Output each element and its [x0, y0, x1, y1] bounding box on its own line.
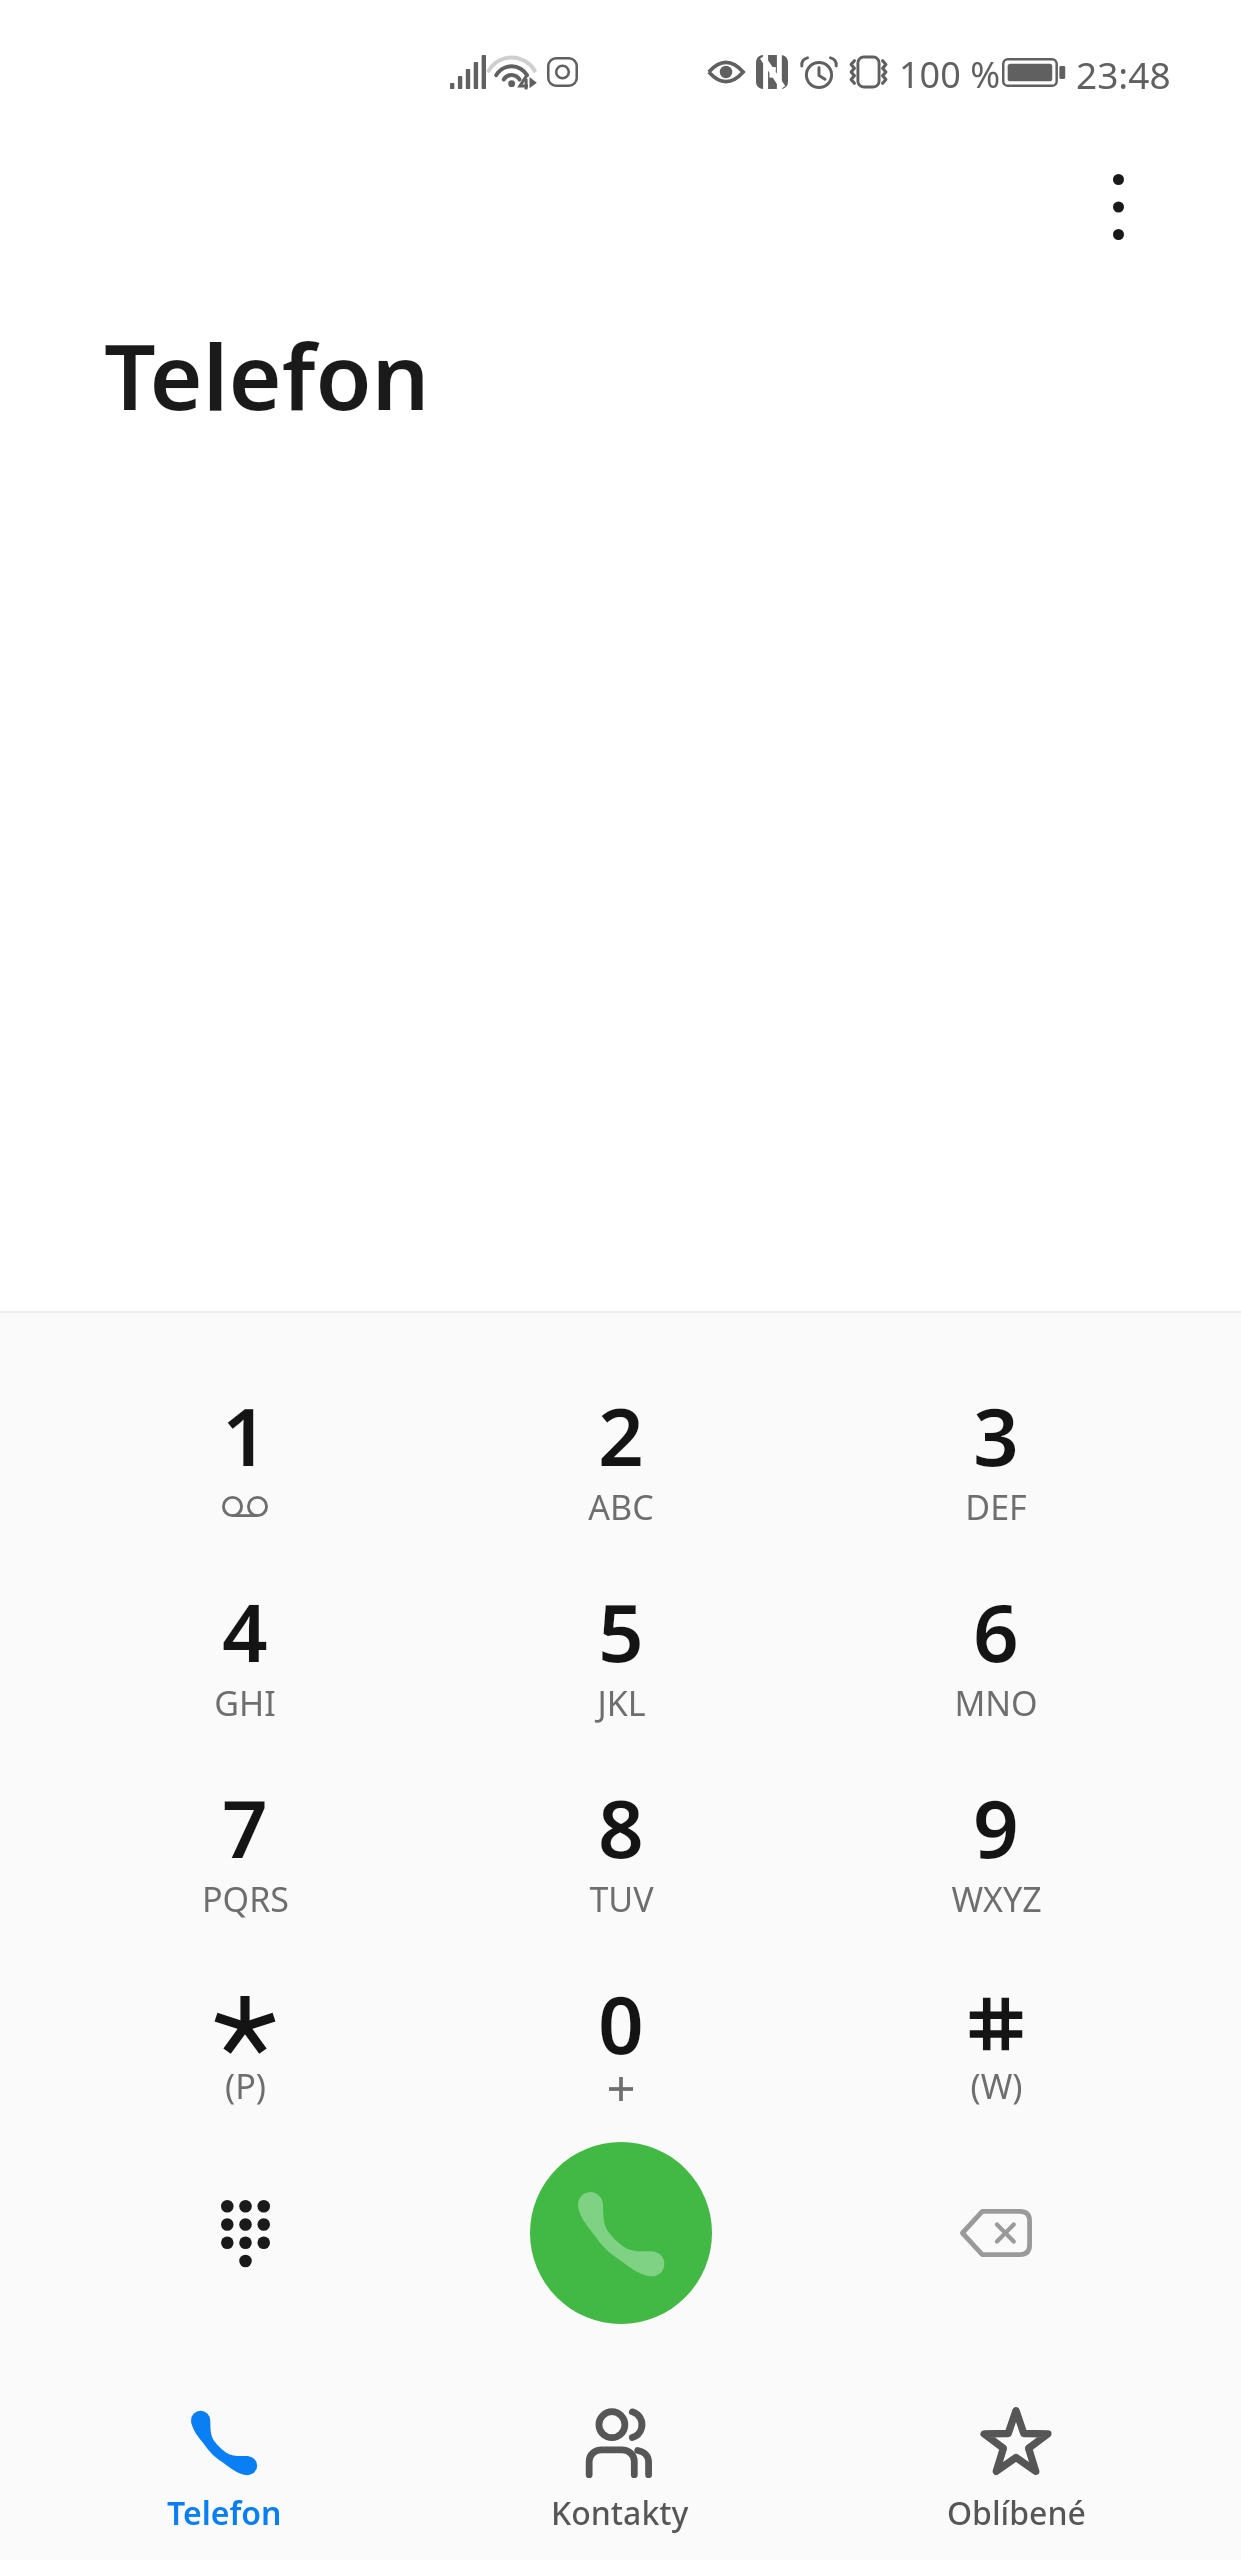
staticText: 8	[598, 1772, 644, 1862]
button[interactable]: Call	[530, 2142, 712, 2324]
staticText: (P)	[225, 2063, 266, 2109]
button[interactable]: Kontakty	[422, 2384, 818, 2560]
staticText: GHI	[214, 1680, 276, 1726]
staticText: 9	[973, 1772, 1019, 1862]
staticText: WXYZ	[951, 1876, 1042, 1922]
staticText: 0	[598, 1968, 644, 2058]
staticText: 3	[973, 1380, 1019, 1470]
button[interactable]: More options	[1073, 162, 1163, 252]
button[interactable]: Oblíbené	[818, 2384, 1214, 2560]
button[interactable]: 9	[809, 1756, 1183, 1952]
staticText: MNO	[954, 1680, 1038, 1726]
staticText: PQRS	[202, 1876, 289, 1922]
button[interactable]: Telefon	[26, 2384, 422, 2560]
button[interactable]: (W)	[809, 1952, 1183, 2148]
staticText: 23:48	[1076, 49, 1171, 99]
staticText: JKL	[597, 1680, 646, 1726]
staticText: Telefon	[167, 2491, 282, 2535]
button[interactable]: Hide dialpad	[145, 2143, 345, 2323]
staticText: (W)	[970, 2063, 1023, 2109]
button[interactable]: 6	[809, 1560, 1183, 1756]
button[interactable]: 4	[58, 1560, 432, 1756]
staticText: 1	[222, 1380, 268, 1470]
staticText: 5	[598, 1576, 644, 1666]
button[interactable]: 7	[58, 1756, 432, 1952]
staticText: Oblíbené	[947, 2491, 1086, 2535]
staticText: 4	[222, 1576, 268, 1666]
button[interactable]: 0	[434, 1952, 808, 2148]
staticText: ABC	[588, 1484, 654, 1530]
staticText: 7	[222, 1772, 268, 1862]
staticText: 100 %	[899, 50, 1001, 99]
staticText: Kontakty	[551, 2491, 689, 2535]
staticText: DEF	[965, 1484, 1027, 1530]
staticText: Telefon	[104, 313, 430, 437]
button[interactable]: 8	[434, 1756, 808, 1952]
button[interactable]: 3	[809, 1364, 1183, 1560]
button[interactable]: (P)	[58, 1952, 432, 2148]
staticText: 2	[598, 1380, 644, 1470]
button[interactable]: 5	[434, 1560, 808, 1756]
staticText: TUV	[589, 1876, 654, 1922]
button[interactable]: 1	[58, 1364, 432, 1560]
button[interactable]: Backspace	[896, 2143, 1096, 2323]
staticText: 6	[973, 1576, 1019, 1666]
button[interactable]: 2	[434, 1364, 808, 1560]
